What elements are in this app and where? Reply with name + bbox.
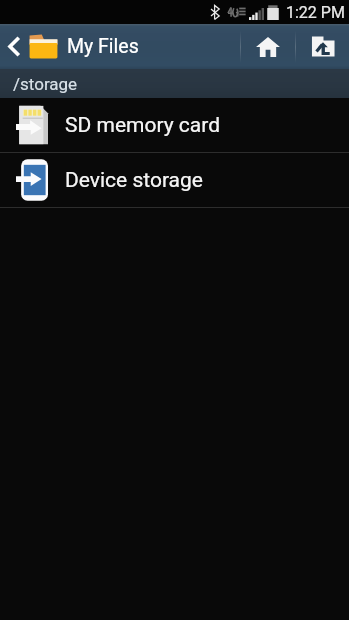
button[interactable]: Home [241, 24, 295, 69]
button[interactable]: Back [0, 24, 145, 69]
button[interactable]: Up one level [296, 24, 349, 69]
staticText: SD memory card [65, 113, 221, 138]
staticText: Device storage [65, 168, 203, 193]
staticText: My Files [67, 35, 139, 58]
staticText: /storage [13, 74, 78, 94]
button[interactable]: SD memory card [0, 98, 349, 153]
other: Back [8, 37, 19, 56]
button[interactable]: Device storage [0, 153, 349, 208]
staticText: 1:22 PM [286, 3, 345, 22]
